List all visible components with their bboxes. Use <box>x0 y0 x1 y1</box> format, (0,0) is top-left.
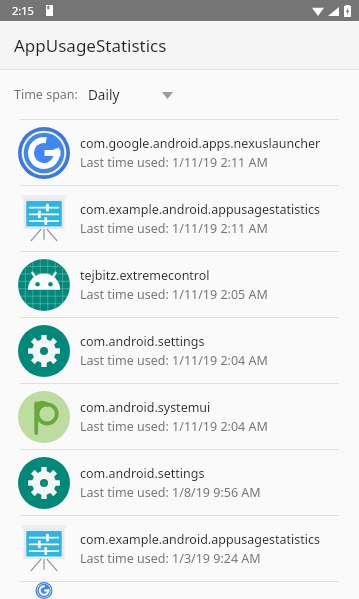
button[interactable]: tejbitz.extremecontrol <box>0 252 359 318</box>
staticText: tejbitz.extremecontrol <box>80 267 210 284</box>
staticText: com.example.android.appusagestatistics <box>80 201 321 218</box>
staticText: com.android.systemui <box>80 399 211 416</box>
staticText: AppUsageStatistics <box>14 34 167 57</box>
button[interactable]: com.example.android.appusagestatistics <box>0 516 359 582</box>
staticText: 2:15 <box>12 3 34 18</box>
staticText: Daily <box>88 86 120 104</box>
staticText: com.android.settings <box>80 333 205 350</box>
staticText: Last time used: 1/11/19 2:05 AM <box>80 286 268 303</box>
staticText: com.android.settings <box>80 465 205 482</box>
staticText: Last time used: 1/11/19 2:11 AM <box>80 220 268 237</box>
button[interactable] <box>0 582 359 599</box>
staticText: Last time used: 1/11/19 2:04 AM <box>80 418 268 435</box>
button[interactable]: Daily <box>88 80 173 110</box>
button[interactable]: com.android.systemui <box>0 384 359 450</box>
staticText: com.google.android.apps.nexuslauncher <box>80 135 321 152</box>
staticText: Time span: <box>14 86 78 103</box>
staticText: Last time used: 1/11/19 2:11 AM <box>80 154 268 171</box>
button[interactable]: com.android.settings <box>0 450 359 516</box>
staticText: com.example.android.appusagestatistics <box>80 531 321 548</box>
staticText: Last time used: 1/11/19 2:04 AM <box>80 352 268 369</box>
other: Open time span dropdown <box>162 92 173 99</box>
button[interactable]: com.example.android.appusagestatistics <box>0 186 359 252</box>
button[interactable]: com.google.android.apps.nexuslauncher <box>0 120 359 186</box>
button[interactable]: com.android.settings <box>0 318 359 384</box>
staticText: Last time used: 1/8/19 9:56 AM <box>80 484 261 501</box>
staticText: Last time used: 1/3/19 9:24 AM <box>80 550 261 567</box>
